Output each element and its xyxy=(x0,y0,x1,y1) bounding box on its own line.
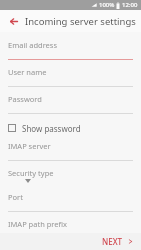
staticText: 12:00 xyxy=(122,1,138,9)
button[interactable]: Email address xyxy=(0,37,141,64)
staticText: User name xyxy=(8,67,47,77)
staticText: IMAP path prefix xyxy=(8,219,68,229)
staticText: NEXT xyxy=(102,236,123,247)
button[interactable]: Security type dropdown xyxy=(0,165,141,189)
staticText: Email address xyxy=(8,40,58,50)
staticText: Show password xyxy=(22,123,81,134)
button[interactable]: IMAP server xyxy=(0,138,141,165)
staticText: Incoming server settings xyxy=(25,15,136,28)
button[interactable]: NEXT xyxy=(94,233,141,250)
button[interactable]: IMAP path prefix xyxy=(0,216,141,233)
button[interactable]: Password xyxy=(0,91,141,118)
staticText: IMAP server xyxy=(8,141,51,151)
staticText: Port xyxy=(8,192,23,202)
button[interactable]: Show password xyxy=(0,118,141,138)
staticText: 100% xyxy=(99,1,115,9)
staticText: Password xyxy=(8,94,42,104)
button[interactable]: Port xyxy=(0,189,141,216)
button[interactable]: User name xyxy=(0,64,141,91)
button[interactable]: Back xyxy=(5,13,21,29)
staticText: Security type xyxy=(8,168,54,178)
